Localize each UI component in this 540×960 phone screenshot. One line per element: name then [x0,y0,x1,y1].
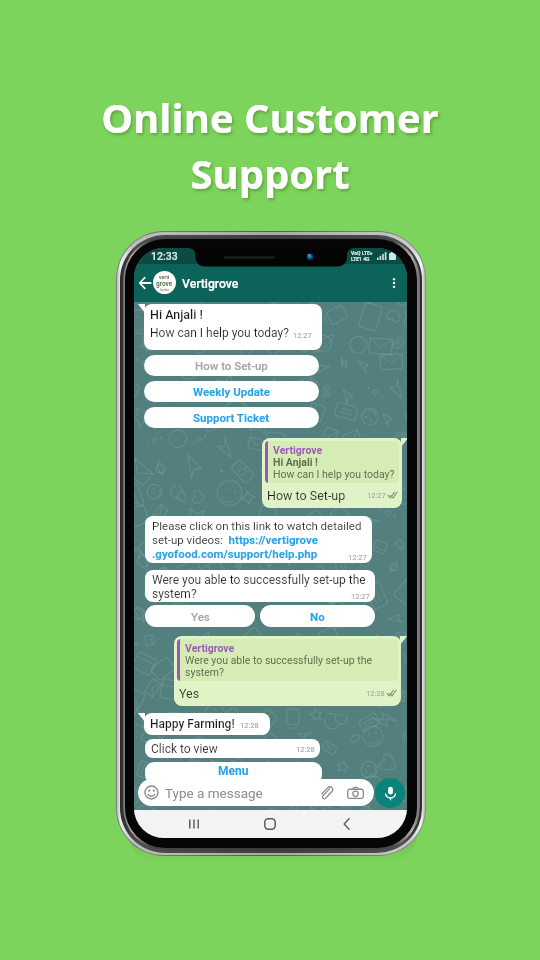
staticText: Vertigrove [273,444,323,456]
staticText: Online Customer [101,90,439,144]
staticText: grove [156,280,173,288]
staticText: 12:28 [296,745,315,754]
staticText: LTE1 4G [351,256,370,262]
staticText: Weekly Update [193,385,270,398]
staticText: 12:28 [366,689,385,698]
button[interactable]: No [260,605,375,627]
button[interactable]: Type a message [138,779,374,806]
staticText: 12:27 [293,331,312,340]
staticText: Menu [218,764,249,778]
staticText: Hi Anjali ! [273,456,318,468]
staticText: How can I help you today? [273,468,395,480]
staticText: 12:33 [151,250,178,262]
staticText: Type a message [165,785,263,801]
staticText: Hi Anjali ! [150,307,203,322]
staticText: Vertigrove [182,277,239,291]
staticText: VoQ LTE+ [351,250,373,256]
staticText: Yes [191,610,210,623]
button[interactable]: Camera [345,783,365,803]
staticText: How to Set-up [195,359,268,372]
staticText: hydro [160,288,169,292]
staticText: Support Ticket [193,411,270,424]
button[interactable]: Attach [316,783,336,803]
staticText: Were you able to successfully set-up the… [152,573,366,601]
staticText: Vertigrove [185,642,235,654]
button[interactable]: More options [383,264,405,302]
button[interactable]: Voice message [375,778,405,808]
button[interactable]: Recents [178,810,210,838]
staticText: Support [190,146,350,200]
staticText: 12:27 [351,592,370,601]
staticText: 12:27 [367,491,386,500]
button[interactable]: Back [134,264,156,302]
staticText: Were you able to successfully set-up the… [185,654,373,678]
staticText: How to Set-up [267,488,346,503]
staticText: 12:28 [240,721,259,730]
button[interactable]: Home [254,810,286,838]
staticText: How can I help you today? [150,326,289,340]
staticText: Yes [179,686,200,701]
button[interactable]: Vertigrove profile [153,271,176,294]
staticText: Click to view [151,742,218,756]
staticText: No [310,610,325,623]
button[interactable]: Yes [145,605,255,627]
button[interactable]: How to Set-up [144,355,319,376]
staticText: Please click on this link to watch detai… [152,519,362,561]
staticText: Happy Farming! [150,717,235,731]
button[interactable]: Back [331,810,363,838]
button[interactable]: Weekly Update [144,381,319,402]
button[interactable]: Support Ticket [144,407,319,428]
staticText: verti [159,274,170,280]
staticText: 12:27 [348,553,367,562]
